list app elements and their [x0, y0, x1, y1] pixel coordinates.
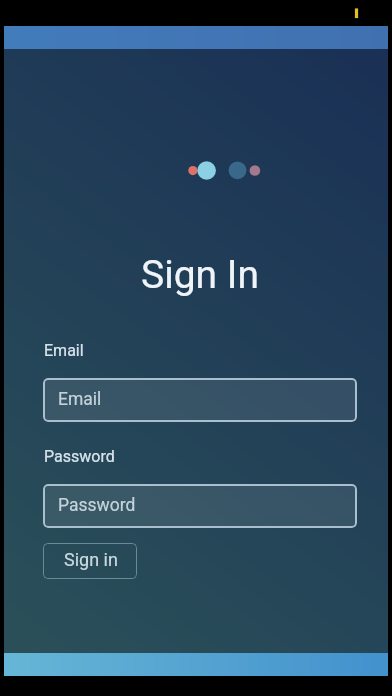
staticText: Email — [58, 389, 102, 410]
staticText: Email — [44, 341, 84, 360]
staticText: Password — [58, 495, 136, 516]
staticText: Sign in — [64, 549, 118, 570]
other: Battery status — [0, 0, 392, 696]
staticText: Sign In — [8, 252, 392, 298]
other: App logo — [4, 26, 388, 676]
button[interactable]: Password — [43, 484, 357, 528]
button[interactable]: Email — [43, 378, 357, 422]
button[interactable]: Sign in — [43, 543, 137, 579]
staticText: Password — [44, 447, 115, 466]
